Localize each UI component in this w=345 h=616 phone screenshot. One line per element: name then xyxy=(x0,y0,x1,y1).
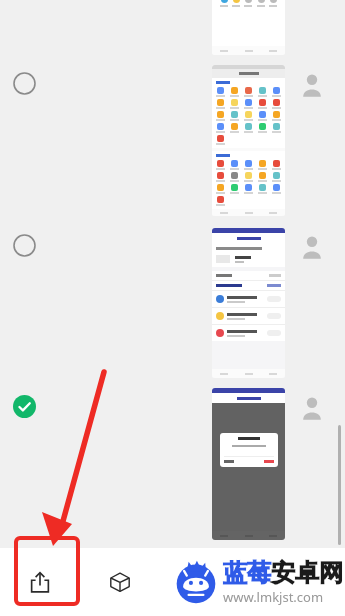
button[interactable] xyxy=(212,228,285,378)
button[interactable]: Share xyxy=(0,548,80,616)
staticText: 蓝莓 xyxy=(223,558,271,588)
staticText: 安卓网 xyxy=(271,558,343,588)
button[interactable] xyxy=(212,0,285,55)
button[interactable]: Object xyxy=(80,548,160,616)
button[interactable] xyxy=(212,65,285,216)
button[interactable] xyxy=(212,388,285,540)
button[interactable]: Selected xyxy=(13,395,36,418)
staticText: www.lmkjst.com xyxy=(223,588,324,606)
button[interactable]: Select xyxy=(13,234,36,257)
button[interactable]: Select xyxy=(13,72,36,95)
